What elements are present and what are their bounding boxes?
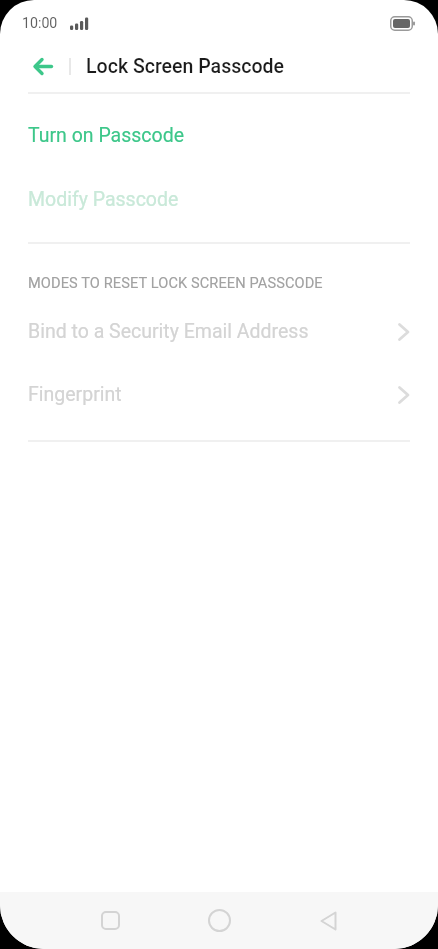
staticText: 10:00 xyxy=(22,15,58,32)
button[interactable]: Fingerprint xyxy=(0,383,438,406)
button[interactable] xyxy=(274,892,383,949)
staticText: Fingerprint xyxy=(28,383,122,406)
staticText: Lock Screen Passcode xyxy=(86,55,285,78)
button[interactable] xyxy=(0,40,66,92)
button[interactable]: Turn on Passcode xyxy=(0,124,438,147)
button[interactable] xyxy=(55,892,165,949)
button[interactable]: Bind to a Security Email Address xyxy=(0,320,438,343)
staticText: Bind to a Security Email Address xyxy=(28,320,309,343)
button[interactable] xyxy=(165,892,274,949)
staticText: MODES TO RESET LOCK SCREEN PASSCODE xyxy=(28,274,323,291)
button[interactable]: Modify Passcode xyxy=(0,188,438,211)
staticText: Modify Passcode xyxy=(28,188,179,211)
staticText: Turn on Passcode xyxy=(28,124,185,147)
